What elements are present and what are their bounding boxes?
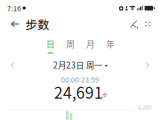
button[interactable]: 日	[40, 37, 60, 54]
button[interactable]: Next day	[141, 57, 154, 73]
staticText: 月	[86, 37, 95, 50]
staticText: 步数	[25, 15, 49, 33]
staticText: 周	[66, 37, 75, 50]
staticText: 00:00-23:59	[61, 74, 99, 84]
button[interactable]: More options	[141, 17, 154, 30]
button[interactable]: Share	[127, 17, 141, 31]
staticText: 步	[101, 91, 107, 100]
staticText: 7:16	[7, 3, 21, 13]
button[interactable]: 2月23日 周一	[49, 57, 112, 73]
button[interactable]: 月	[80, 37, 100, 54]
staticText: 3,200	[137, 103, 151, 111]
staticText: 2月23日 周一	[53, 59, 102, 71]
staticText: 日	[46, 37, 55, 50]
button[interactable]: 周	[60, 37, 80, 54]
button[interactable]: Previous day	[6, 57, 19, 73]
staticText: 年	[106, 37, 115, 50]
staticText: 24,691	[54, 80, 103, 103]
button[interactable]: 年	[100, 37, 120, 54]
button[interactable]: Back	[6, 16, 24, 32]
